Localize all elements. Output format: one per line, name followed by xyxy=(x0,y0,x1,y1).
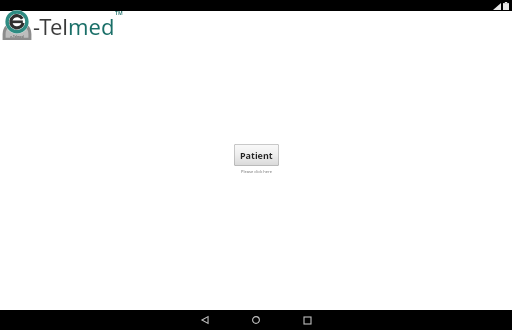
button[interactable]: Back xyxy=(194,310,216,330)
staticText: med xyxy=(68,11,115,41)
staticText: Patient xyxy=(240,149,273,161)
button[interactable]: Home xyxy=(245,310,267,330)
button[interactable]: Patient xyxy=(234,144,279,166)
staticText: -Tel xyxy=(33,11,68,41)
button[interactable]: Recent apps xyxy=(296,310,318,330)
staticText: TM xyxy=(115,10,123,17)
staticText: e-Telmed xyxy=(10,35,24,39)
staticText: Please click here xyxy=(241,169,272,174)
